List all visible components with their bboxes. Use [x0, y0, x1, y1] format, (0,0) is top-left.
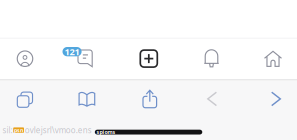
staticText: psn	[14, 127, 23, 134]
button[interactable]: Messages, 121 unread	[54, 39, 100, 79]
button[interactable]: Notifications	[187, 39, 235, 79]
button[interactable]: Tabs	[0, 78, 47, 118]
button[interactable]: Create	[125, 39, 173, 79]
button[interactable]: Forward	[188, 79, 236, 119]
staticText: spioms	[96, 128, 115, 135]
button[interactable]: Account	[1, 39, 49, 79]
staticText: ovlejsrl\vmoo.ens	[25, 125, 92, 135]
button[interactable]: Home	[249, 39, 297, 79]
staticText: 121	[64, 45, 79, 58]
button[interactable]: Back	[252, 79, 297, 119]
button[interactable]: Bookmarks	[63, 79, 111, 119]
staticText: sil:	[2, 125, 12, 135]
button[interactable]: Share	[126, 79, 174, 119]
